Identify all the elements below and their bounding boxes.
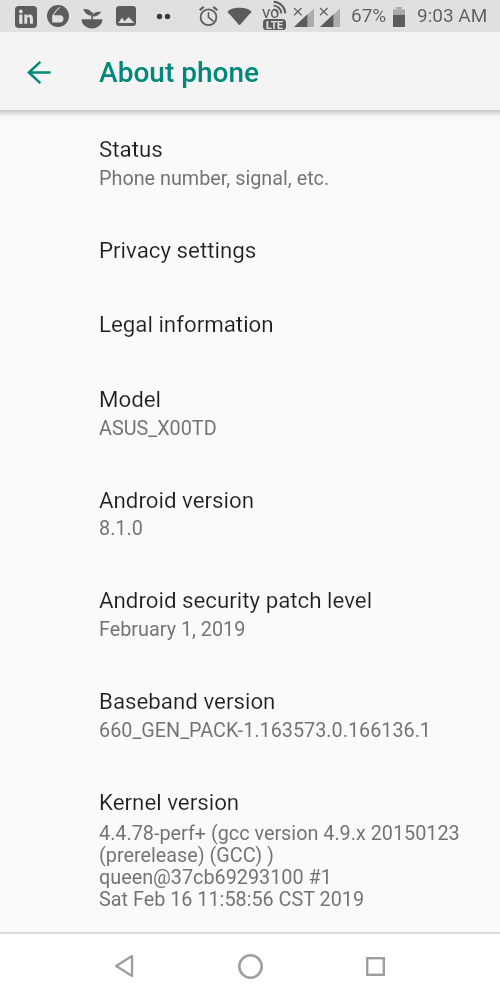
staticText: Status xyxy=(99,136,163,162)
staticText: Legal information xyxy=(99,311,274,337)
button[interactable]: Status xyxy=(0,131,500,205)
staticText: ASUS_X00TD xyxy=(99,417,217,440)
staticText: Baseband version xyxy=(99,688,276,714)
staticText: VO xyxy=(262,6,280,21)
staticText: About phone xyxy=(99,56,260,89)
staticText: 8.1.0 xyxy=(99,517,143,540)
staticText: Android security patch level xyxy=(99,587,373,613)
staticText: LTE xyxy=(266,19,283,30)
staticText: Phone number, signal, etc. xyxy=(99,167,330,190)
staticText: 67% xyxy=(351,4,387,26)
staticText: 9:03 AM xyxy=(417,4,488,26)
button[interactable]: Baseband version xyxy=(0,683,500,757)
button[interactable]: Kernel version xyxy=(0,784,500,904)
staticText: Android version xyxy=(99,487,255,513)
staticText: Privacy settings xyxy=(99,237,257,263)
button[interactable]: Model xyxy=(0,381,500,455)
button[interactable]: Back xyxy=(101,942,149,990)
staticText: February 1, 2019 xyxy=(99,618,246,641)
staticText: Model xyxy=(99,386,162,412)
button[interactable]: Privacy settings xyxy=(0,232,500,280)
staticText: 660_GEN_PACK-1.163573.0.166136.1 xyxy=(99,719,431,742)
button[interactable]: Legal information xyxy=(0,306,500,354)
button[interactable]: Android version xyxy=(0,482,500,556)
staticText: 4.4.78-perf+ (gcc version 4.9.x 20150123… xyxy=(99,822,460,911)
button[interactable]: Android security patch level xyxy=(0,582,500,656)
button[interactable]: Recent apps xyxy=(351,942,399,990)
button[interactable]: Home xyxy=(226,942,274,990)
button[interactable]: Navigate up xyxy=(17,50,61,94)
staticText: Kernel version xyxy=(99,789,240,815)
